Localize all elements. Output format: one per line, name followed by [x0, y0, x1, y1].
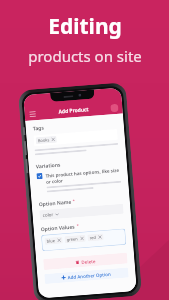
staticText: * — [72, 198, 76, 204]
staticText: red — [89, 235, 97, 240]
staticText: products on site — [28, 46, 142, 66]
button[interactable]: green — [66, 236, 84, 242]
staticText: blue — [46, 238, 56, 244]
staticText: Delete — [81, 258, 96, 265]
button[interactable]: Add Another Option — [44, 267, 129, 284]
staticText: Option Name — [38, 199, 72, 208]
button[interactable]: blue — [41, 229, 126, 251]
staticText: Variations — [35, 161, 61, 170]
staticText: Books — [38, 137, 50, 143]
staticText: Add Product — [58, 106, 90, 115]
staticText: color — [42, 211, 54, 218]
button[interactable]: Books — [38, 137, 55, 143]
button[interactable]: red — [89, 234, 102, 240]
button[interactable]: color — [39, 204, 124, 220]
staticText: green — [66, 236, 79, 242]
staticText: This product has options, like size or c… — [45, 167, 121, 185]
staticText: Option Values — [40, 223, 76, 233]
button[interactable]: Menu — [28, 110, 36, 118]
button[interactable]: Books — [33, 129, 118, 146]
button[interactable]: This product has options, like size or c… — [36, 167, 122, 193]
button[interactable]: blue — [46, 238, 61, 244]
staticText: Add Another Option — [67, 271, 112, 280]
staticText: Editing — [48, 12, 122, 41]
staticText: Tags — [33, 125, 44, 132]
staticText: * — [76, 223, 80, 228]
button[interactable]: Delete — [43, 252, 128, 270]
button[interactable]: Account — [110, 104, 119, 112]
